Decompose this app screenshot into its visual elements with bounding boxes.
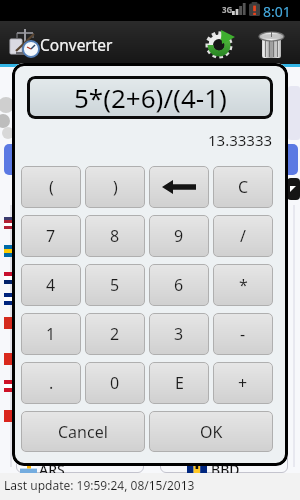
button[interactable]: C [213,166,273,208]
button[interactable]: 8 [85,215,145,257]
button[interactable]: Cancel [21,411,145,452]
staticText: ) [113,176,118,198]
staticText: - [240,323,246,345]
staticText: C [238,176,249,198]
staticText: * [239,274,248,296]
button[interactable]: . [21,362,81,404]
staticText: 13.33333 [208,130,273,150]
staticText: 6 [174,274,184,296]
button[interactable] [149,166,209,208]
staticText: 5 [110,274,120,296]
staticText: BBD [211,460,240,479]
staticText: OK [200,421,223,443]
button[interactable]: OK [149,411,273,452]
staticText: Cancel [58,421,108,443]
staticText: / [240,225,246,247]
button[interactable]: 5 [85,264,145,306]
staticText: 1 [46,323,56,345]
staticText: 5*(2+6)/(4-1) [74,80,227,115]
staticText: ARS [39,460,65,479]
button[interactable]: E [149,362,209,404]
staticText: 3 [174,323,184,345]
staticText: 8:01 [263,2,291,21]
staticText: Last update: 19:59:24, 08/15/2013 [4,477,195,493]
button[interactable] [4,144,298,175]
button[interactable] [8,26,38,60]
button[interactable]: 9 [149,215,209,257]
button[interactable]: 3 [149,313,209,355]
staticText: E [175,372,184,394]
button[interactable]: / [213,215,273,257]
staticText: ( [49,176,54,198]
staticText: + [238,372,248,394]
staticText: 7 [46,225,56,247]
button[interactable]: - [213,313,273,355]
staticText: 8 [110,225,120,247]
staticText: 3G [222,4,233,15]
button[interactable]: 6 [149,264,209,306]
button[interactable]: 7 [21,215,81,257]
staticText: 9 [174,225,184,247]
staticText: 4 [46,274,56,296]
button[interactable]: 1 [21,313,81,355]
button[interactable] [204,28,238,60]
button[interactable]: + [213,362,273,404]
button[interactable]: 5*(2+6)/(4-1) [27,76,273,119]
button[interactable]: 0 [85,362,145,404]
staticText: 0 [110,372,120,394]
button[interactable]: 4 [21,264,81,306]
button[interactable]: ( [21,166,81,208]
staticText: . [49,372,54,394]
button[interactable]: ) [85,166,145,208]
button[interactable]: 2 [85,313,145,355]
button[interactable]: * [213,264,273,306]
button[interactable] [257,29,285,59]
staticText: Converter [40,34,113,55]
staticText: 2 [110,323,120,345]
